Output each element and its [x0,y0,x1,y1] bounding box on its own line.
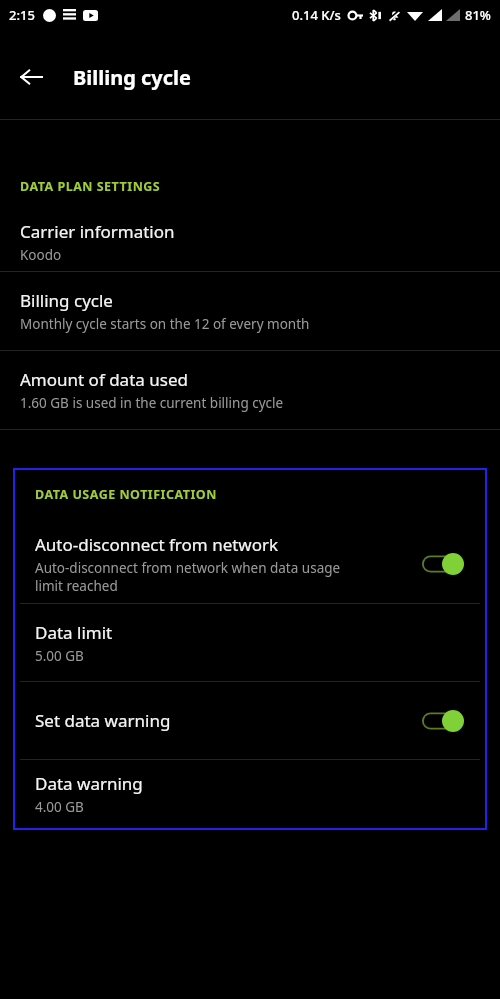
button[interactable]: Carrier information [0,213,500,271]
staticText: Auto-disconnect from network when data u… [35,559,352,595]
button[interactable]: Back [10,56,52,98]
staticText: Monthly cycle starts on the 12 of every … [20,315,310,333]
staticText: Billing cycle [20,289,113,312]
button[interactable]: Data limit [15,604,485,681]
staticText: DATA USAGE NOTIFICATION [35,486,217,503]
staticText: 5.00 GB [35,647,84,665]
staticText: 81% [465,6,491,24]
staticText: Auto-disconnect from network [35,533,279,556]
staticText: Koodo [20,246,62,264]
staticText: Amount of data used [20,368,188,391]
button[interactable]: Data warning [15,760,485,828]
button[interactable]: Billing cycle [0,272,500,350]
staticText: Set data warning [35,709,171,732]
button[interactable]: Amount of data used [0,351,500,429]
button[interactable]: Toggle Auto-disconnect from network [422,547,468,581]
staticText: Data limit [35,621,113,644]
staticText: 0.14 K/s [292,6,341,24]
staticText: 1.60 GB is used in the current billing c… [20,394,284,412]
button[interactable]: Set data warning [15,682,485,759]
staticText: 4.00 GB [35,798,84,816]
staticText: Data warning [35,772,143,795]
staticText: Carrier information [20,220,175,243]
staticText: 2:15 [9,6,35,24]
button[interactable]: Toggle Set data warning [422,704,468,738]
staticText: Billing cycle [73,64,191,91]
staticText: DATA PLAN SETTINGS [20,178,161,195]
button[interactable]: Auto-disconnect from network [15,525,485,603]
